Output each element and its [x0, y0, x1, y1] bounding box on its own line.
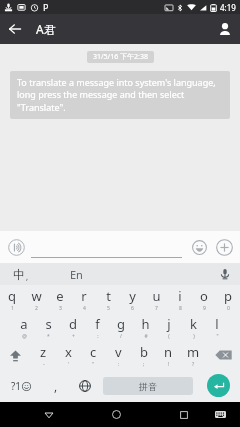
- staticText: ): [193, 333, 195, 340]
- button[interactable]: w: [24, 285, 48, 313]
- button[interactable]: Shift: [0, 341, 30, 369]
- staticText: 8: [179, 305, 182, 312]
- staticText: P: [43, 1, 49, 13]
- staticText: ;: [143, 361, 145, 368]
- staticText: 0: [227, 305, 230, 312]
- button[interactable]: p: [216, 285, 240, 313]
- button[interactable]: En: [70, 267, 83, 282]
- button[interactable]: Choose input method: [206, 402, 234, 427]
- button[interactable]: Switch language: [70, 369, 100, 402]
- button[interactable]: r: [72, 285, 96, 313]
- staticText: @: [22, 333, 27, 340]
- staticText: 中: [13, 267, 25, 282]
- button[interactable]: Backspace: [206, 341, 240, 369]
- staticText: #: [144, 333, 148, 340]
- button[interactable]: Voice input: [216, 265, 234, 283]
- staticText: i: [178, 287, 182, 305]
- button[interactable]: f: [85, 313, 109, 341]
- button[interactable]: Hide keyboard: [35, 402, 63, 427]
- staticText: g: [117, 315, 125, 333]
- staticText: 31/5/16 下午2:38: [93, 52, 148, 62]
- staticText: -: [43, 361, 45, 368]
- button[interactable]: n: [156, 341, 181, 369]
- staticText: ?1: [11, 379, 22, 393]
- staticText: t: [106, 287, 111, 305]
- staticText: v: [115, 343, 122, 361]
- staticText: 2: [35, 305, 38, 312]
- button[interactable]: s: [36, 313, 61, 341]
- staticText: s: [45, 315, 52, 333]
- button[interactable]: q: [0, 285, 24, 313]
- button[interactable]: ,: [42, 369, 70, 402]
- staticText: (: [168, 333, 170, 340]
- button[interactable]: d: [61, 313, 85, 341]
- button[interactable]: To translate a message into system's lan…: [10, 71, 230, 119]
- staticText: /: [120, 333, 122, 340]
- staticText: +: [72, 333, 75, 340]
- staticText: z: [40, 343, 47, 361]
- staticText: 1: [11, 305, 14, 312]
- staticText: y: [129, 287, 136, 305]
- button[interactable]: Add attachment: [211, 234, 237, 260]
- staticText: To translate a message into system's lan…: [17, 76, 223, 114]
- staticText: !: [168, 361, 170, 368]
- staticText: 4:19: [220, 2, 236, 13]
- button[interactable]: l: [205, 313, 229, 341]
- staticText: 5: [107, 305, 110, 312]
- staticText: A君: [36, 21, 56, 37]
- button[interactable]: g: [109, 313, 133, 341]
- staticText: u: [152, 287, 161, 305]
- staticText: ?: [192, 361, 195, 368]
- staticText: :: [97, 333, 99, 340]
- staticText: q: [8, 287, 16, 305]
- button[interactable]: x: [56, 341, 81, 369]
- staticText: d: [69, 315, 77, 333]
- staticText: :: [118, 361, 120, 368]
- staticText: ,: [26, 271, 29, 282]
- button[interactable]: Back: [0, 14, 30, 44]
- button[interactable]: ?1: [0, 369, 42, 402]
- staticText: 9: [203, 305, 206, 312]
- button[interactable]: u: [144, 285, 168, 313]
- button[interactable]: Home: [102, 402, 130, 427]
- button[interactable]: Send: [207, 374, 230, 397]
- staticText: b: [140, 343, 148, 361]
- button[interactable]: Emoji: [187, 235, 211, 259]
- staticText: n: [164, 343, 173, 361]
- button[interactable]: o: [192, 285, 216, 313]
- button[interactable]: j: [157, 313, 181, 341]
- button[interactable]: h: [133, 313, 157, 341]
- button[interactable]: v: [106, 341, 131, 369]
- staticText: 4: [83, 305, 86, 312]
- staticText: 拼音: [139, 381, 157, 392]
- button[interactable]: a: [11, 313, 36, 341]
- button[interactable]: y: [120, 285, 144, 313]
- staticText: ': [68, 361, 70, 368]
- button[interactable]: c: [81, 341, 106, 369]
- staticText: m: [187, 343, 200, 361]
- staticText: f: [95, 315, 100, 333]
- staticText: o: [200, 287, 208, 305]
- button[interactable]: m: [181, 341, 206, 369]
- button[interactable]: z: [30, 341, 56, 369]
- staticText: 6: [131, 305, 134, 312]
- staticText: h: [141, 315, 150, 333]
- button[interactable]: b: [131, 341, 156, 369]
- button[interactable]: 拼音: [103, 377, 193, 395]
- button[interactable]: Contact profile: [210, 14, 240, 44]
- button[interactable]: k: [181, 313, 205, 341]
- button[interactable]: e: [48, 285, 72, 313]
- staticText: 3: [59, 305, 62, 312]
- button[interactable]: Recent apps: [170, 402, 198, 427]
- staticText: p: [224, 287, 232, 305]
- button[interactable]: 中: [13, 267, 29, 282]
- button[interactable]: i: [168, 285, 192, 313]
- staticText: w: [31, 287, 42, 305]
- staticText: *: [47, 333, 50, 340]
- staticText: k: [190, 315, 197, 333]
- button[interactable]: Voice message: [4, 235, 28, 259]
- staticText: j: [167, 315, 171, 333]
- staticText: r: [81, 287, 87, 305]
- button[interactable]: [31, 236, 182, 258]
- button[interactable]: t: [96, 285, 120, 313]
